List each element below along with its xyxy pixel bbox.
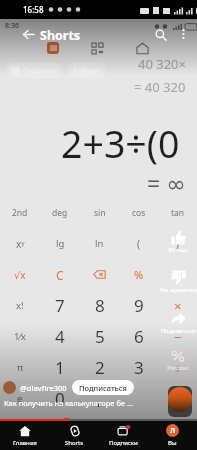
button[interactable]: lg (40, 228, 80, 259)
staticText: √x (14, 268, 26, 282)
staticText: cos (132, 207, 146, 219)
button[interactable]: ) (158, 228, 197, 259)
button[interactable]: 3 (119, 352, 158, 383)
button[interactable]: C (40, 259, 80, 290)
button[interactable]: ( (119, 228, 158, 259)
button[interactable]: 1⁄x (0, 321, 40, 352)
staticText: Вы (168, 439, 177, 447)
button[interactable]: 1 (40, 352, 80, 383)
button[interactable]: Back (19, 25, 37, 43)
staticText: 1⁄x (14, 330, 26, 343)
button[interactable]: Menu (47, 42, 59, 54)
button[interactable]: xʸ (0, 228, 40, 259)
button[interactable]: 2nd (0, 197, 40, 228)
button[interactable]: в эфире (68, 63, 106, 78)
staticText: Shorts (65, 439, 84, 447)
button[interactable]: deg (40, 197, 80, 228)
button[interactable]: + (158, 352, 197, 383)
staticText: × (174, 297, 182, 315)
button[interactable]: Shorts (50, 421, 99, 450)
button[interactable] (119, 383, 158, 414)
staticText: − (174, 328, 182, 346)
button[interactable]: 0 (40, 383, 80, 414)
staticText: 5 (95, 325, 105, 348)
button[interactable]: Converter (135, 42, 149, 55)
button[interactable]: Не нравится (159, 270, 197, 302)
staticText: 8 (95, 294, 105, 317)
button[interactable]: √x (0, 259, 40, 290)
button[interactable]: × (158, 290, 197, 321)
button[interactable]: ÷ (158, 259, 197, 290)
staticText: Поделиться (160, 327, 196, 335)
button[interactable]: , (80, 383, 119, 414)
button[interactable]: Поделиться (159, 311, 197, 343)
staticText: 7 (55, 294, 65, 317)
button[interactable]: cos (119, 197, 158, 228)
staticText: sin (94, 207, 106, 219)
button[interactable]: Подписаться (72, 380, 134, 395)
button[interactable]: x! (0, 290, 40, 321)
button[interactable]: 5 (80, 321, 119, 352)
staticText: Подписаться (79, 383, 127, 392)
button[interactable]: − (158, 321, 197, 352)
staticText: Shorts (40, 27, 81, 44)
button[interactable]: = (158, 383, 197, 414)
button[interactable]: 6 (119, 321, 158, 352)
staticText: = (174, 390, 182, 408)
staticText: % (134, 267, 144, 282)
staticText: 69 тыс. (168, 246, 189, 254)
staticText: ln (95, 237, 104, 250)
staticText: = 40 320 (134, 78, 186, 96)
staticText: 1 (55, 356, 65, 379)
staticText: Подписки (109, 439, 138, 447)
staticText: xʸ (16, 237, 25, 251)
button[interactable]: 2 (80, 352, 119, 383)
staticText: tan (171, 207, 185, 219)
staticText: Л (170, 426, 176, 436)
staticText: @dlavfire300 (20, 383, 67, 393)
staticText: x! (16, 299, 24, 312)
staticText: 2 (95, 356, 105, 379)
button[interactable]: % (119, 259, 158, 290)
button[interactable]: 9 (119, 290, 158, 321)
button[interactable]: Channel avatar (168, 386, 192, 417)
staticText: 6 (134, 325, 144, 348)
button[interactable]: Channel avatar small (3, 381, 16, 394)
button[interactable]: Scientific mode (91, 42, 104, 55)
staticText: 2nd (12, 207, 28, 219)
staticText: ) (176, 237, 179, 251)
staticText: 9 (134, 294, 144, 317)
staticText: 40 320× (138, 55, 186, 73)
staticText: Не нравится (160, 286, 197, 294)
button[interactable]: Подписки (6, 63, 63, 78)
button[interactable]: 7 (40, 290, 80, 321)
staticText: Как получить на калькуляторе бе … (4, 398, 133, 408)
button[interactable]: Главная (0, 421, 50, 450)
button[interactable]: ln (80, 228, 119, 259)
button[interactable]: Backspace (80, 259, 119, 290)
staticText: 0 (55, 387, 65, 410)
button[interactable]: e (0, 383, 40, 414)
button[interactable]: More options (176, 27, 190, 41)
button[interactable]: 4 (40, 321, 80, 352)
button[interactable]: Ремикс (159, 349, 197, 381)
button[interactable]: 69 тыс. (159, 230, 197, 262)
staticText: e (17, 392, 23, 405)
staticText: , (97, 387, 102, 410)
staticText: 16:58 (23, 4, 44, 15)
button[interactable]: 8 (80, 290, 119, 321)
button[interactable]: π (0, 352, 40, 383)
staticText: π (17, 361, 24, 374)
staticText: lg (56, 237, 65, 250)
button[interactable]: Подписки (99, 421, 148, 450)
button[interactable]: sin (80, 197, 119, 228)
staticText: ÷ (174, 266, 182, 284)
staticText: Ремикс (167, 364, 189, 372)
button[interactable]: tan (158, 197, 197, 228)
staticText: Подписки (23, 66, 58, 76)
button[interactable]: Л (148, 421, 197, 450)
staticText: + (174, 359, 182, 377)
staticText: 3 (134, 356, 144, 379)
staticText: 8:36 (5, 21, 19, 31)
button[interactable]: Search (153, 27, 168, 42)
